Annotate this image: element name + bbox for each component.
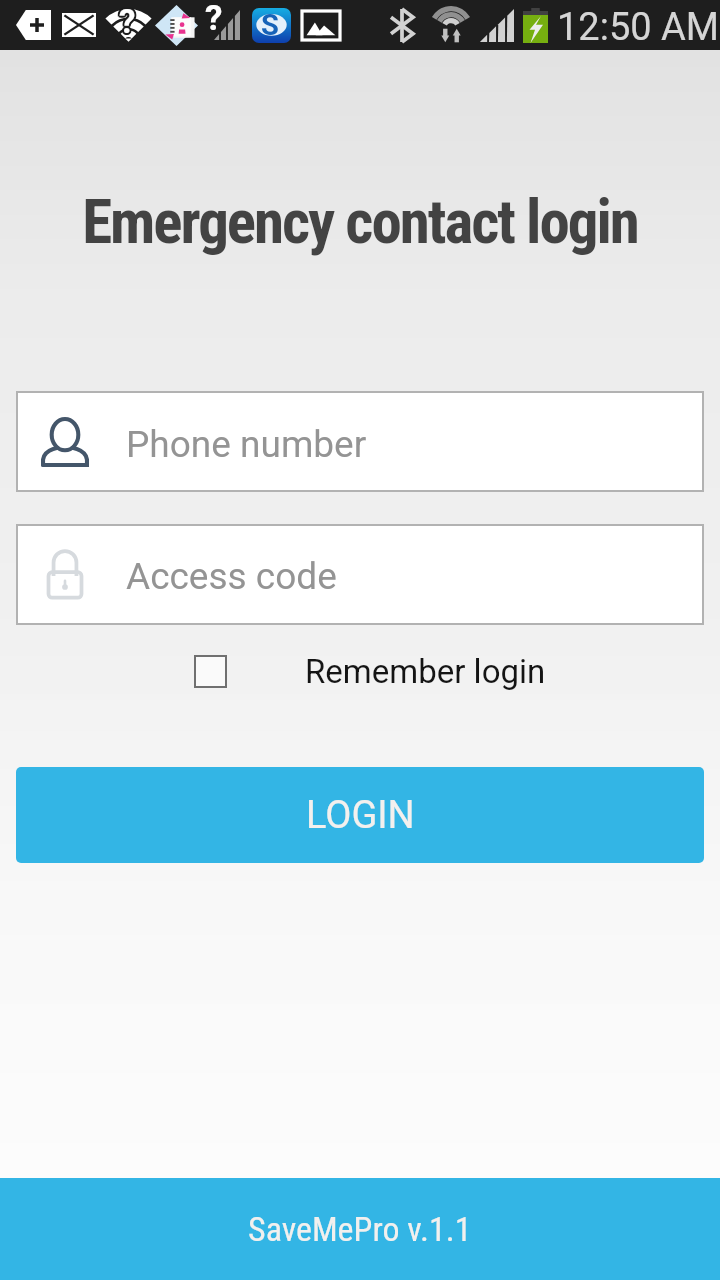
staticText: LOGIN [306, 793, 415, 838]
staticText: SaveMePro v.1.1 [248, 1209, 472, 1249]
staticText: Access code [126, 555, 337, 598]
staticText: ? [119, 1, 136, 40]
staticText: ? [117, 2, 134, 41]
staticText: ? [119, 2, 136, 41]
staticText: ? [120, 4, 137, 43]
staticText: ? [120, 1, 137, 40]
button[interactable]: Remember login [0, 645, 720, 697]
staticText: Emergency contact login [0, 186, 720, 257]
staticText: ? [121, 2, 138, 41]
button[interactable]: LOGIN [16, 767, 704, 863]
staticText: 12:50 AM [557, 5, 720, 50]
staticText: ? [118, 3, 135, 42]
staticText: Phone number [126, 423, 367, 466]
staticText: ? [118, 2, 135, 41]
staticText: ? [117, 3, 134, 42]
staticText: ? [120, 0, 137, 39]
staticText: ? [120, 2, 137, 41]
staticText: ? [119, 2, 136, 41]
staticText: Remember login [305, 652, 546, 691]
staticText: ? [120, 3, 137, 42]
staticText: ? [119, 3, 136, 42]
staticText: ? [121, 1, 138, 40]
staticText: S [261, 8, 279, 42]
staticText: ? [119, 0, 136, 39]
staticText: ? [118, 0, 135, 39]
staticText: ? [117, 1, 134, 40]
button[interactable]: Phone number input [16, 391, 704, 492]
staticText: ? [118, 4, 135, 43]
button[interactable]: Access code input [16, 524, 704, 625]
staticText: ? [119, 4, 136, 43]
staticText: ? [121, 3, 138, 42]
staticText: ? [118, 1, 135, 40]
staticText: ? [205, 0, 223, 39]
